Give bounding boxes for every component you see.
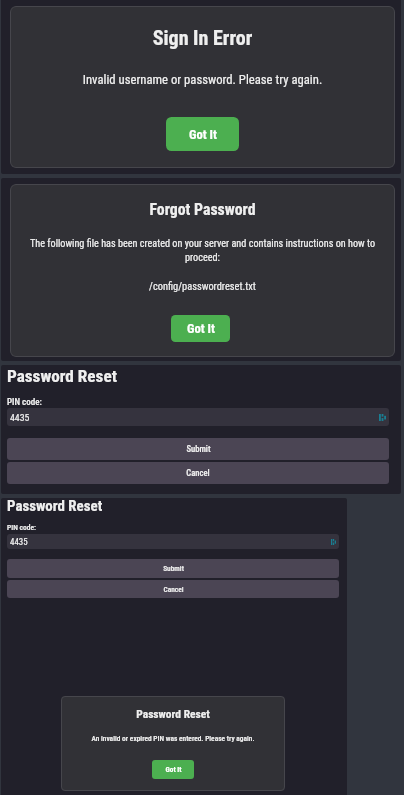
button[interactable]: Got It (152, 760, 194, 779)
staticText: Got It (165, 765, 182, 774)
staticText: Got It (189, 127, 217, 142)
staticText: Got It (187, 321, 215, 336)
staticText: Forgot Password (10, 200, 395, 219)
button[interactable]: Submit (7, 559, 339, 578)
button[interactable]: Got It (166, 117, 239, 151)
button[interactable]: 4435 (7, 534, 339, 549)
staticText: Submit (186, 444, 211, 454)
staticText: Password Reset (7, 366, 117, 386)
staticText: Password Reset (7, 498, 103, 514)
button[interactable]: Cancel (7, 580, 339, 598)
button[interactable]: Cancel (7, 462, 389, 484)
staticText: PIN code: (7, 523, 36, 532)
staticText: 4435 (10, 537, 28, 547)
staticText: Password Reset (61, 707, 285, 720)
staticText: The following file has been created on y… (25, 238, 380, 263)
other: Show PIN (331, 539, 336, 545)
staticText: Sign In Error (10, 26, 395, 49)
staticText: Invalid username or password. Please try… (10, 72, 395, 87)
staticText: /config/passwordreset.txt (10, 280, 395, 292)
staticText: 4435 (10, 412, 30, 423)
staticText: Cancel (186, 468, 210, 478)
staticText: PIN code: (7, 397, 42, 408)
other: Show PIN (379, 414, 386, 421)
staticText: Submit (163, 564, 184, 573)
button[interactable]: Got It (171, 315, 230, 342)
staticText: An invalid or expired PIN was entered. P… (61, 734, 285, 743)
staticText: Cancel (163, 585, 184, 594)
button[interactable]: 4435 (7, 408, 389, 426)
button[interactable]: Submit (7, 438, 389, 460)
